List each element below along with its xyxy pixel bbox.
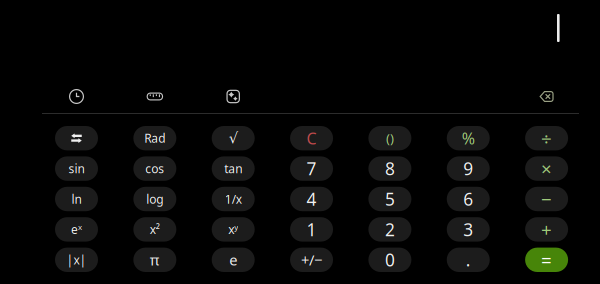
button[interactable]: 2 bbox=[368, 217, 411, 242]
button[interactable]: eˣ bbox=[55, 217, 98, 242]
button[interactable]: − bbox=[525, 187, 568, 211]
staticText: 2 bbox=[385, 218, 395, 241]
staticText: +/− bbox=[301, 250, 322, 270]
staticText: 5 bbox=[385, 187, 395, 210]
staticText: 0 bbox=[385, 248, 395, 271]
staticText: 4 bbox=[306, 187, 316, 210]
staticText: π bbox=[150, 250, 160, 270]
staticText: eˣ bbox=[71, 221, 82, 237]
staticText: 8 bbox=[385, 157, 395, 180]
button[interactable]: 4 bbox=[290, 187, 333, 211]
button[interactable]: Delete bbox=[525, 86, 568, 107]
button[interactable]: + bbox=[525, 217, 568, 242]
button[interactable]: 0 bbox=[368, 248, 411, 272]
staticText: |x| bbox=[66, 252, 86, 268]
button[interactable]: = bbox=[525, 248, 568, 272]
button[interactable]: C bbox=[290, 126, 333, 150]
staticText: C bbox=[306, 128, 316, 149]
staticText: 1 bbox=[306, 218, 316, 241]
staticText: 3 bbox=[463, 218, 473, 241]
button[interactable]: 1 bbox=[290, 217, 333, 242]
button[interactable]: () bbox=[368, 126, 411, 150]
button[interactable]: % bbox=[447, 126, 490, 150]
staticText: √ bbox=[229, 130, 238, 146]
button[interactable]: 9 bbox=[447, 156, 490, 181]
staticText: − bbox=[541, 187, 552, 211]
button[interactable]: sin bbox=[55, 156, 98, 181]
staticText: . bbox=[466, 248, 471, 271]
staticText: log bbox=[146, 191, 163, 207]
button[interactable]: . bbox=[447, 248, 490, 272]
button[interactable]: 5 bbox=[368, 187, 411, 211]
button[interactable]: √ bbox=[212, 126, 255, 150]
button[interactable]: Second functions bbox=[55, 126, 98, 150]
button[interactable]: ÷ bbox=[525, 126, 568, 150]
staticText: xʸ bbox=[228, 221, 238, 237]
staticText: 7 bbox=[306, 157, 316, 180]
button[interactable]: π bbox=[133, 248, 176, 272]
button[interactable]: × bbox=[525, 156, 568, 181]
button[interactable]: x² bbox=[133, 217, 176, 242]
button[interactable]: log bbox=[133, 187, 176, 211]
button[interactable]: +/− bbox=[290, 248, 333, 272]
button[interactable]: Convert bbox=[133, 86, 176, 107]
button[interactable]: 7 bbox=[290, 156, 333, 181]
staticText: ln bbox=[71, 191, 81, 207]
staticText: ÷ bbox=[541, 126, 552, 151]
button[interactable]: xʸ bbox=[212, 217, 255, 242]
staticText: 9 bbox=[463, 157, 473, 180]
button[interactable]: 1/x bbox=[212, 187, 255, 211]
staticText: tan bbox=[224, 161, 242, 176]
button[interactable]: ln bbox=[55, 187, 98, 211]
button[interactable]: Math Notes bbox=[212, 86, 255, 107]
staticText: + bbox=[541, 217, 552, 242]
button[interactable]: |x| bbox=[55, 248, 98, 272]
button[interactable]: e bbox=[212, 248, 255, 272]
staticText: % bbox=[462, 128, 475, 149]
staticText: () bbox=[386, 129, 394, 147]
button[interactable]: cos bbox=[133, 156, 176, 181]
staticText: × bbox=[541, 156, 552, 181]
staticText: x² bbox=[150, 221, 160, 237]
staticText: = bbox=[541, 247, 552, 272]
button[interactable]: tan bbox=[212, 156, 255, 181]
button[interactable]: 6 bbox=[447, 187, 490, 211]
staticText: sin bbox=[68, 161, 84, 176]
staticText: 1/x bbox=[225, 191, 242, 207]
button[interactable]: 3 bbox=[447, 217, 490, 242]
staticText: e bbox=[229, 250, 237, 270]
staticText: Rad bbox=[144, 130, 165, 146]
button[interactable]: Rad bbox=[133, 126, 176, 150]
staticText: cos bbox=[145, 161, 164, 176]
staticText: 6 bbox=[463, 187, 473, 210]
button[interactable]: 8 bbox=[368, 156, 411, 181]
button[interactable]: History bbox=[55, 86, 98, 107]
